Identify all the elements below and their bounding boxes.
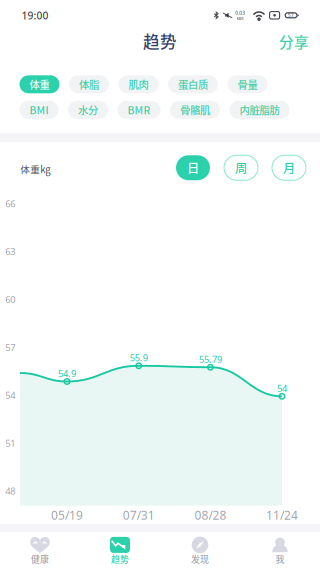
staticText: 55.9 (130, 351, 148, 364)
button[interactable]: 肌肉 (118, 75, 158, 93)
button[interactable]: 月 (272, 155, 306, 180)
staticText: 54.9 (58, 367, 76, 380)
staticText: 07/31 (123, 507, 155, 523)
staticText: 体重kg (20, 162, 50, 176)
staticText: 体脂 (79, 77, 99, 92)
staticText: KB/S (237, 16, 244, 21)
staticText: 周 (235, 159, 247, 177)
staticText: 分享 (279, 31, 309, 52)
staticText: 57 (288, 12, 294, 18)
staticText: 骨骼肌 (180, 102, 210, 117)
staticText: 54 (277, 382, 287, 394)
staticText: 趋势 (111, 552, 129, 565)
staticText: 66 (5, 197, 15, 210)
button[interactable]: 趋势 (80, 532, 160, 569)
staticText: 63 (5, 245, 15, 258)
staticText: BMI (29, 102, 48, 117)
staticText: 内脏脂肪 (239, 102, 279, 117)
button[interactable]: 骨量 (227, 75, 267, 93)
button[interactable]: 分享 (274, 26, 314, 57)
button[interactable]: 我 (240, 532, 320, 569)
staticText: 57 (5, 341, 15, 354)
button[interactable]: 骨骼肌 (170, 101, 220, 119)
staticText: 11/24 (266, 507, 298, 523)
staticText: 0.03 (235, 10, 245, 16)
staticText: 健康 (31, 552, 49, 565)
staticText: 55.79 (199, 353, 222, 365)
staticText: 51 (5, 437, 15, 449)
button[interactable]: 体重 (19, 75, 59, 93)
button[interactable]: 蛋白质 (168, 75, 218, 93)
button[interactable]: BMR (117, 101, 160, 119)
staticText: 54 (5, 389, 15, 401)
button[interactable]: 体脂 (69, 75, 109, 93)
staticText: 月 (283, 159, 295, 177)
staticText: 趋势 (143, 29, 177, 53)
staticText: 19:00 (21, 8, 48, 22)
button[interactable]: 健康 (0, 532, 80, 569)
staticText: 我 (275, 552, 284, 565)
staticText: 日 (187, 159, 199, 177)
button[interactable]: BMI (19, 101, 58, 119)
staticText: BMR (127, 102, 150, 117)
staticText: 骨量 (237, 77, 257, 92)
staticText: 水分 (78, 102, 98, 117)
button[interactable]: 周 (224, 155, 258, 180)
staticText: 蛋白质 (178, 77, 208, 92)
staticText: 48 (5, 485, 15, 497)
button[interactable]: 发现 (160, 532, 240, 569)
staticText: 肌肉 (128, 77, 148, 92)
button[interactable]: 水分 (68, 101, 108, 119)
button[interactable]: 内脏脂肪 (229, 101, 289, 119)
button[interactable]: 日 (176, 155, 210, 180)
staticText: 08/28 (194, 507, 226, 523)
staticText: 05/19 (51, 507, 83, 523)
staticText: 体重 (29, 77, 49, 92)
staticText: 发现 (191, 552, 209, 565)
staticText: 60 (5, 293, 15, 306)
